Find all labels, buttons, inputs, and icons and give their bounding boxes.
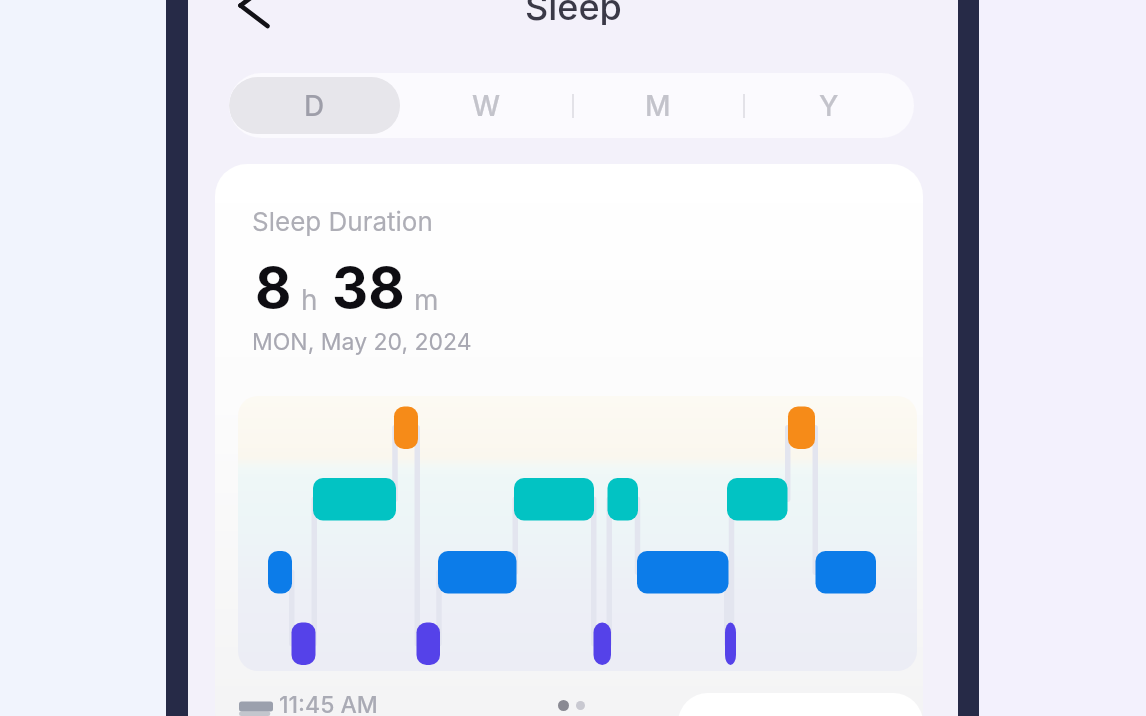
staticText: M <box>645 89 671 123</box>
button[interactable]: Y <box>743 73 914 138</box>
staticText: Y <box>819 89 839 123</box>
staticText: W <box>472 89 501 123</box>
button[interactable]: M <box>572 73 743 138</box>
button[interactable]: Sleep Duration <box>215 164 923 716</box>
button[interactable]: Back <box>220 0 272 32</box>
staticText: h <box>301 283 318 317</box>
staticText: Sleep <box>525 0 622 25</box>
staticText: Sleep Duration <box>252 206 433 237</box>
staticText: m <box>414 283 439 317</box>
button[interactable]: 11:45 AM <box>235 691 378 716</box>
button[interactable]: W <box>400 73 572 138</box>
staticText: 11:45 AM <box>279 691 378 716</box>
button[interactable]: D <box>229 77 400 134</box>
staticText: D <box>304 89 325 123</box>
staticText: 38 <box>332 254 405 322</box>
staticText: 8 <box>255 254 292 322</box>
staticText: MON, May 20, 2024 <box>252 328 472 356</box>
